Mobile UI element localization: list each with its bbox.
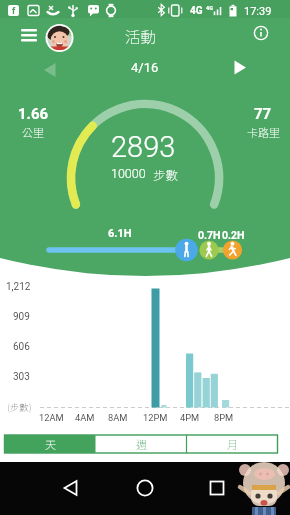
staticText: 10000 <box>111 166 146 181</box>
staticText: 4G <box>206 5 213 11</box>
button[interactable] <box>248 20 274 46</box>
button[interactable] <box>45 24 74 52</box>
staticText: 2893 <box>111 130 176 164</box>
button[interactable] <box>55 476 85 500</box>
staticText: 17:39 <box>244 5 272 18</box>
button[interactable]: 週 <box>96 435 187 453</box>
staticText: 4AM <box>75 412 95 423</box>
staticText: 4PM <box>180 412 200 423</box>
button[interactable] <box>13 25 45 51</box>
staticText: 909 <box>13 311 30 323</box>
staticText: 0.7H <box>198 229 221 241</box>
button[interactable] <box>38 58 62 82</box>
staticText: 303 <box>13 371 30 383</box>
staticText: 1.66 <box>18 105 49 123</box>
staticText: 6.1H <box>108 227 132 240</box>
staticText: 606 <box>13 341 30 353</box>
staticText: 4/16 <box>131 60 159 75</box>
button[interactable]: 月 <box>187 435 278 453</box>
staticText: 卡路里 <box>247 124 280 140</box>
staticText: 4G <box>190 5 203 17</box>
button[interactable] <box>130 476 160 500</box>
staticText: 公里 <box>22 124 44 140</box>
staticText: 天 <box>45 436 56 452</box>
staticText: 12AM <box>39 412 64 423</box>
staticText: (步數) <box>7 400 32 414</box>
staticText: 1,212 <box>6 281 31 293</box>
staticText: 活動 <box>125 25 157 47</box>
staticText: 0.2H <box>222 229 245 241</box>
staticText: 8PM <box>214 412 234 423</box>
button[interactable] <box>202 476 232 500</box>
staticText: 12PM <box>143 412 168 423</box>
staticText: 77 <box>254 105 272 123</box>
button[interactable] <box>229 56 253 80</box>
button[interactable]: 天 <box>5 435 96 453</box>
staticText: 週 <box>136 436 147 452</box>
staticText: 8AM <box>108 412 128 423</box>
staticText: 月 <box>227 436 238 452</box>
staticText: 步數 <box>153 165 179 181</box>
staticText: f <box>12 6 16 17</box>
